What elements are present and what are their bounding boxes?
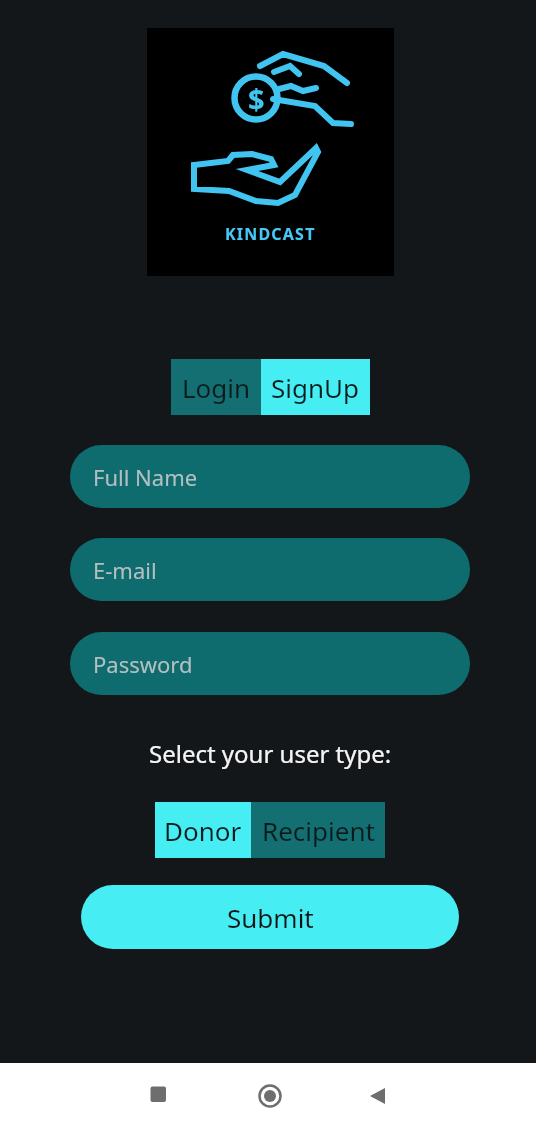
staticText: Recipient — [262, 813, 375, 848]
staticText: Submit — [227, 900, 314, 935]
staticText: Donor — [164, 813, 242, 848]
button[interactable]: E-mail — [70, 538, 470, 601]
button[interactable]: Full Name — [70, 445, 470, 508]
button[interactable]: Recipient — [251, 802, 385, 858]
staticText: $ — [248, 79, 265, 117]
button[interactable]: Password — [70, 632, 470, 695]
staticText: Full Name — [93, 462, 198, 492]
staticText: SignUp — [271, 370, 360, 405]
button[interactable]: SignUp — [261, 359, 370, 415]
staticText: E-mail — [93, 555, 157, 585]
button[interactable]: Submit — [81, 885, 459, 949]
staticText: Password — [93, 649, 193, 679]
staticText: Login — [182, 370, 251, 405]
staticText: Select your user type: — [149, 737, 392, 770]
button[interactable]: Login — [171, 359, 261, 415]
button[interactable]: Donor — [155, 802, 251, 858]
staticText: KINDCAST — [225, 223, 316, 245]
